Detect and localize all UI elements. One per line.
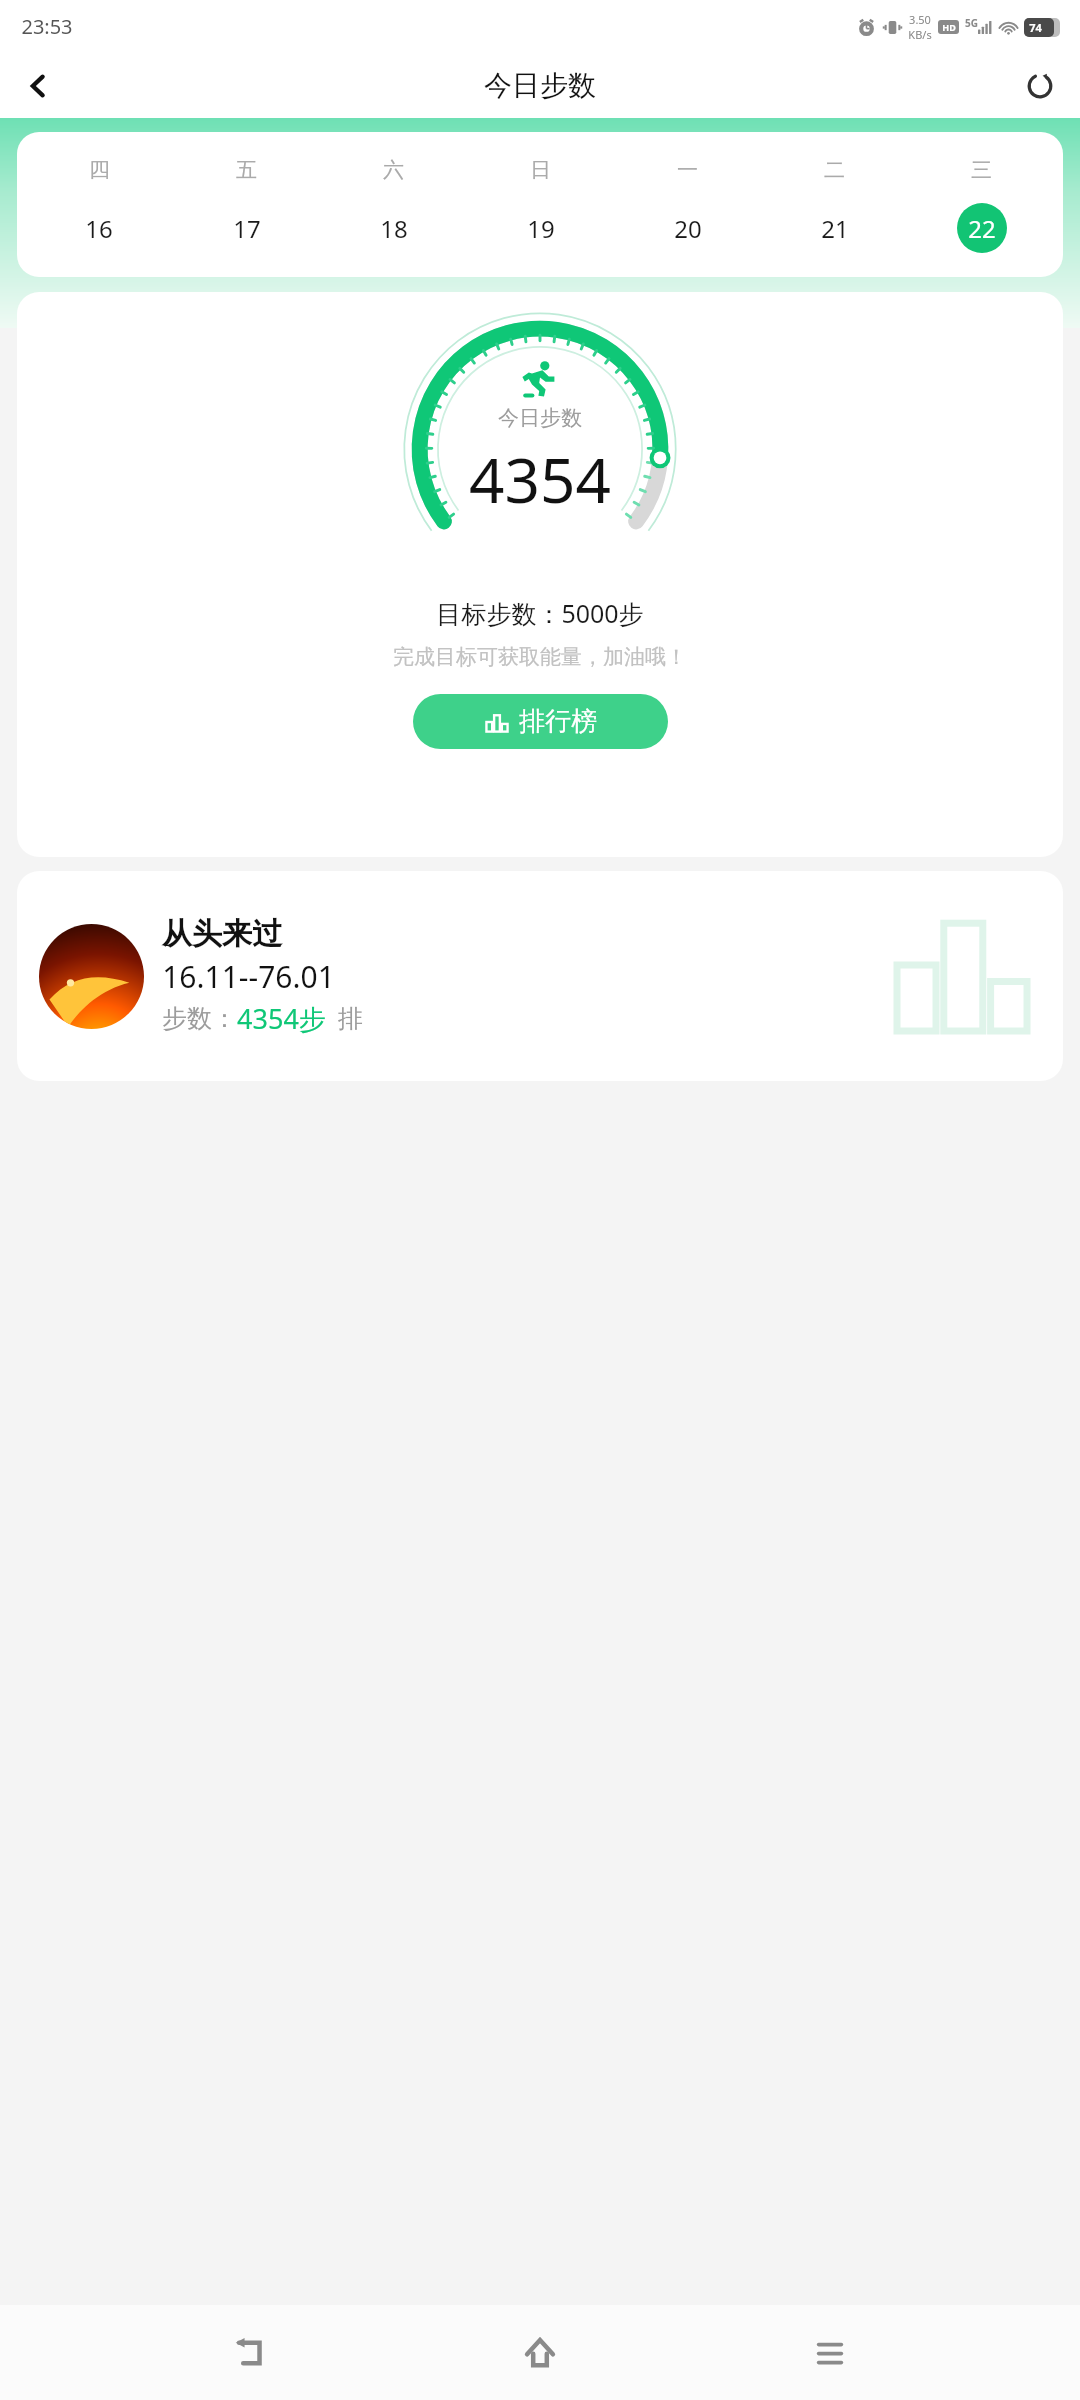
button[interactable]: 二 xyxy=(761,132,908,277)
button[interactable]: Home xyxy=(500,2313,580,2393)
staticText: 六 xyxy=(383,157,404,183)
staticText: 四 xyxy=(89,157,110,183)
staticText: KB/s xyxy=(908,27,932,42)
button[interactable]: 日 xyxy=(467,132,614,277)
staticText: 今日步数 xyxy=(498,405,582,431)
staticText: 74 xyxy=(1029,20,1042,35)
staticText: 今日步数 xyxy=(484,68,596,103)
button[interactable]: Back xyxy=(210,2313,290,2393)
button[interactable]: Back xyxy=(10,58,66,114)
staticText: 21 xyxy=(821,212,849,245)
staticText: 17 xyxy=(233,212,261,245)
staticText: 5G xyxy=(965,16,978,30)
button[interactable]: 排行榜 xyxy=(413,694,668,749)
staticText: 三 xyxy=(971,157,992,183)
staticText: 二 xyxy=(824,157,845,183)
staticText: 排 xyxy=(338,1003,363,1034)
staticText: 22 xyxy=(968,212,996,245)
staticText: 排行榜 xyxy=(519,705,597,738)
button[interactable]: Menu xyxy=(790,2313,870,2393)
button[interactable]: Refresh xyxy=(1012,58,1068,114)
staticText: 步数： xyxy=(162,1003,237,1034)
button[interactable]: 五 xyxy=(173,132,320,277)
button[interactable]: 六 xyxy=(320,132,467,277)
button[interactable]: 一 xyxy=(614,132,761,277)
staticText: 23:53 xyxy=(21,13,73,40)
staticText: 日 xyxy=(530,157,551,183)
staticText: 目标步数：5000步 xyxy=(436,596,644,630)
staticText: 20 xyxy=(674,212,702,245)
staticText: 16 xyxy=(85,212,113,245)
staticText: 五 xyxy=(236,157,257,183)
staticText: 4354步 xyxy=(237,1000,326,1037)
button[interactable]: 从头来过 xyxy=(17,871,1063,1081)
staticText: 18 xyxy=(380,212,408,245)
staticText: 完成目标可获取能量，加油哦！ xyxy=(393,644,687,670)
staticText: 从头来过 xyxy=(162,915,282,953)
button[interactable]: 四 xyxy=(25,132,173,277)
staticText: 16.11--76.01 xyxy=(162,956,335,997)
staticText: HD xyxy=(942,21,956,33)
staticText: 19 xyxy=(527,212,555,245)
staticText: 4354 xyxy=(469,437,611,521)
staticText: 3.50 xyxy=(909,12,931,27)
button[interactable]: 三 xyxy=(908,132,1055,277)
staticText: 一 xyxy=(677,157,698,183)
